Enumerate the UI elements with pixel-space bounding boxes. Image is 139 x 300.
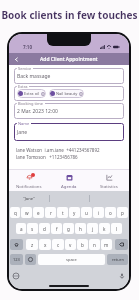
button[interactable]: u [81, 207, 92, 218]
button[interactable]: w [21, 207, 32, 218]
staticText: e [37, 210, 40, 216]
button[interactable]: j [87, 223, 98, 234]
button[interactable]: Notifications [9, 170, 49, 191]
staticText: Jane Tompson +1123456786 [16, 154, 78, 159]
staticText: return [112, 257, 124, 262]
staticText: x [44, 242, 47, 248]
staticText: q [14, 210, 17, 216]
button[interactable]: k [99, 223, 110, 234]
staticText: Notifications [16, 183, 42, 189]
staticText: l [116, 226, 118, 232]
staticText: k [103, 226, 106, 232]
button[interactable]: b [77, 239, 88, 250]
staticText: 7:10 [23, 44, 32, 50]
staticText: z [31, 242, 34, 248]
staticText: d [43, 226, 46, 232]
button[interactable]: n [89, 239, 100, 250]
button[interactable]: Dictation [118, 272, 126, 280]
staticText: Extra [18, 84, 28, 89]
button[interactable]: q [10, 207, 20, 218]
staticText: Nail beauty [56, 91, 78, 96]
staticText: 2 Mar. 2023 12:00 [17, 108, 58, 115]
staticText: y [73, 210, 76, 216]
button[interactable]: s [27, 223, 38, 234]
staticText: o [109, 210, 112, 216]
staticText: v [69, 242, 72, 248]
button[interactable]: m [101, 239, 112, 250]
button[interactable]: c [52, 239, 64, 250]
button[interactable]: 123 [10, 254, 23, 265]
button[interactable]: Nail beauty [49, 89, 84, 98]
button[interactable]: backspace [115, 239, 128, 250]
button[interactable]: shift [10, 239, 23, 250]
staticText: s [31, 226, 34, 232]
staticText: u [85, 210, 88, 216]
button[interactable]: Back massage [14, 68, 124, 84]
button[interactable]: h [75, 223, 86, 234]
button[interactable]: a [16, 223, 26, 234]
staticText: Book clients in few touches [1, 8, 138, 22]
staticText: t [62, 210, 64, 216]
button[interactable]: space [38, 254, 105, 265]
button[interactable]: Emoji keyboard [12, 272, 20, 280]
staticText: 123 [13, 257, 20, 262]
button[interactable]: p [117, 207, 128, 218]
staticText: Name [18, 121, 30, 126]
button[interactable]: v [65, 239, 76, 250]
button[interactable]: l [111, 223, 122, 234]
button[interactable]: d [39, 223, 50, 234]
staticText: space [66, 257, 77, 262]
staticText: a [20, 226, 23, 232]
staticText: Service [18, 66, 32, 71]
staticText: g [67, 226, 70, 232]
staticText: Add Client Appointment [40, 56, 98, 63]
button[interactable]: Jane Watson i.am.jane +441234567892 [16, 147, 122, 152]
staticText: w [25, 210, 29, 216]
button[interactable]: Jane Tompson +1123456786 [16, 154, 122, 159]
staticText: Jane [17, 129, 28, 136]
staticText: f [56, 226, 58, 232]
button[interactable]: g [63, 223, 74, 234]
staticText: Extra oil [24, 91, 40, 96]
staticText: j [92, 226, 94, 232]
staticText: Agenda [61, 183, 77, 189]
staticText: i [98, 210, 100, 216]
staticText: c [57, 242, 60, 248]
staticText: "Jane" [23, 196, 35, 202]
staticText: r [50, 210, 52, 216]
button[interactable]: o [105, 207, 116, 218]
button[interactable]: i [93, 207, 104, 218]
button[interactable]: Back [9, 53, 23, 65]
staticText: n [93, 242, 96, 248]
button[interactable]: return [107, 254, 128, 265]
button[interactable]: y [69, 207, 80, 218]
button[interactable]: Agenda [49, 170, 89, 191]
staticText: m [104, 242, 109, 248]
staticText: h [79, 226, 82, 232]
button[interactable]: Statistics [89, 170, 129, 191]
staticText: Statistics [100, 183, 118, 189]
button[interactable]: Jane [14, 123, 124, 141]
staticText: p [121, 210, 124, 216]
button[interactable]: 2 Mar. 2023 12:00 [14, 103, 124, 119]
button[interactable]: Emoji [25, 254, 36, 265]
button[interactable]: e [33, 207, 44, 218]
button[interactable]: Extra oil [14, 86, 124, 101]
staticText: Jane Watson i.am.jane +441234567892 [16, 147, 100, 152]
button[interactable]: z [26, 239, 38, 250]
staticText: Booking time [18, 101, 44, 106]
staticText: Back massage [17, 73, 51, 80]
button[interactable]: t [57, 207, 68, 218]
button[interactable]: x [39, 239, 51, 250]
button[interactable]: r [45, 207, 56, 218]
button[interactable]: Extra oil [17, 89, 46, 98]
staticText: b [81, 242, 84, 248]
button[interactable]: f [51, 223, 62, 234]
